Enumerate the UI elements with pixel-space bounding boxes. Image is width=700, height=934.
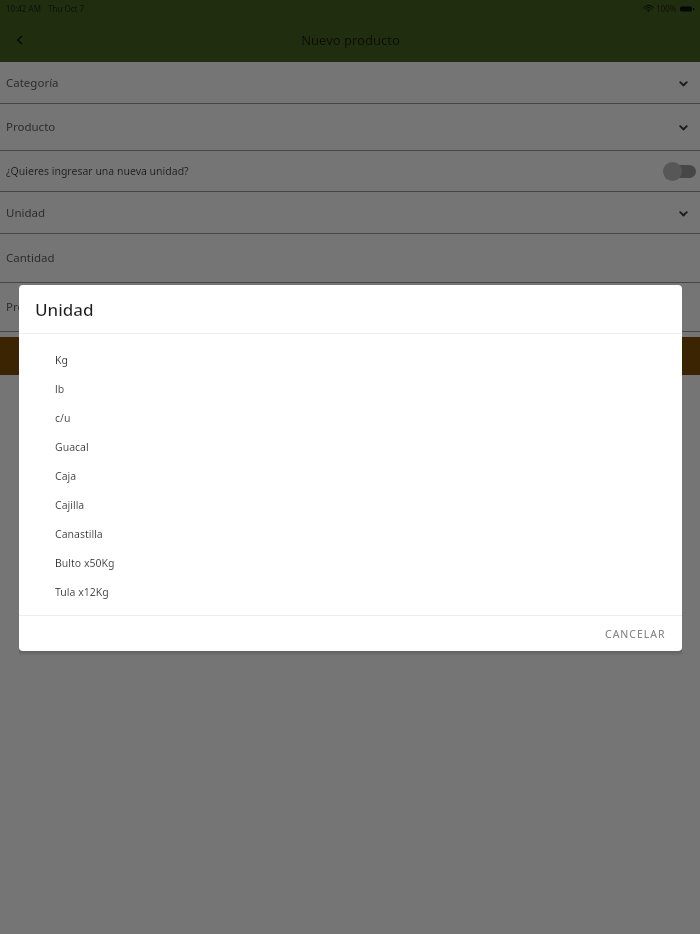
button[interactable]: Caja: [19, 461, 682, 490]
button[interactable]: Cajilla: [19, 490, 682, 519]
button[interactable]: Producto: [0, 104, 700, 151]
staticText: Unidad: [35, 298, 94, 321]
button[interactable]: CANCELAR: [597, 621, 674, 647]
staticText: c/u: [55, 411, 71, 425]
button[interactable]: [0, 337, 74, 375]
button[interactable]: Tula x12Kg: [19, 577, 682, 606]
staticText: 100%: [656, 3, 677, 14]
button[interactable]: Unidad: [0, 192, 700, 234]
staticText: Canastilla: [55, 527, 103, 541]
button[interactable]: c/u: [19, 403, 682, 432]
staticText: Kg: [55, 353, 68, 367]
staticText: lb: [55, 382, 65, 396]
staticText: Tula x12Kg: [55, 585, 109, 599]
button[interactable]: Toggle nueva unidad: [663, 160, 697, 182]
staticText: Nuevo producto: [301, 31, 400, 49]
button[interactable]: Cantidad: [0, 234, 700, 283]
button[interactable]: Guacal: [19, 432, 682, 461]
button[interactable]: Bulto x50Kg: [19, 548, 682, 577]
button[interactable]: Back: [8, 28, 32, 52]
staticText: 10:42 AM: [6, 3, 41, 14]
staticText: ¿Quieres ingresar una nueva unidad?: [6, 164, 189, 178]
button[interactable]: [626, 337, 700, 375]
staticText: Guacal: [55, 440, 89, 454]
staticText: Cajilla: [55, 498, 85, 512]
staticText: Categoría: [6, 75, 59, 91]
staticText: Unidad: [6, 205, 46, 221]
staticText: Precio: [6, 299, 40, 315]
button[interactable]: lb: [19, 374, 682, 403]
staticText: Caja: [55, 469, 77, 483]
button[interactable]: Categoría: [0, 62, 700, 104]
staticText: Cantidad: [6, 250, 55, 266]
staticText: Bulto x50Kg: [55, 556, 115, 570]
staticText: CANCELAR: [605, 627, 666, 641]
button[interactable]: Precio: [0, 283, 700, 332]
staticText: Thu Oct 7: [48, 3, 85, 14]
button[interactable]: Canastilla: [19, 519, 682, 548]
staticText: Producto: [6, 119, 56, 135]
button[interactable]: Kg: [19, 345, 682, 374]
